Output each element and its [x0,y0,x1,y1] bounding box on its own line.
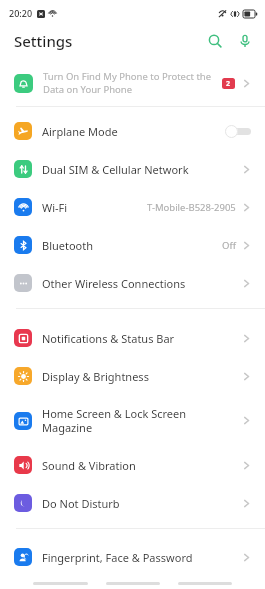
staticText: Notifications & Status Bar [42,331,242,346]
staticText: 20:20 [9,7,33,19]
button[interactable]: Display & Brightness [0,357,265,395]
button[interactable]: Sound & Vibration [0,446,265,484]
button[interactable]: Fingerprint, Face & Password [0,538,265,576]
staticText: Do Not Disturb [42,496,242,511]
button[interactable]: Home Screen & Lock Screen Magazine [0,395,265,446]
button[interactable]: Search [200,26,230,56]
button[interactable]: Wi-Fi [0,188,265,226]
button[interactable]: Voice search [230,26,260,56]
button[interactable]: Dual SIM & Cellular Network [0,150,265,188]
button[interactable]: Notifications & Status Bar [0,319,265,357]
staticText: Off [222,239,236,252]
button[interactable]: Other Wireless Connections [0,264,265,302]
button[interactable]: Do Not Disturb [0,484,265,522]
staticText: Display & Brightness [42,369,242,384]
button[interactable]: Turn On Find My Phone to Protect the Dat… [0,60,265,106]
staticText: T-Mobile-B528-2905 [147,201,236,214]
staticText: Dual SIM & Cellular Network [42,162,242,177]
staticText: Bluetooth [42,238,222,253]
staticText: Settings [14,31,73,51]
staticText: Sound & Vibration [42,458,242,473]
staticText: Wi-Fi [42,200,147,215]
button[interactable]: Bluetooth [0,226,265,264]
button[interactable]: Airplane Mode [0,112,265,150]
staticText: Airplane Mode [42,124,225,139]
staticText: Fingerprint, Face & Password [42,550,242,565]
staticText: 2 [226,79,231,89]
staticText: Home Screen & Lock Screen Magazine [42,406,242,435]
staticText: Other Wireless Connections [42,276,242,291]
staticText: Turn On Find My Phone to Protect the Dat… [43,70,216,96]
